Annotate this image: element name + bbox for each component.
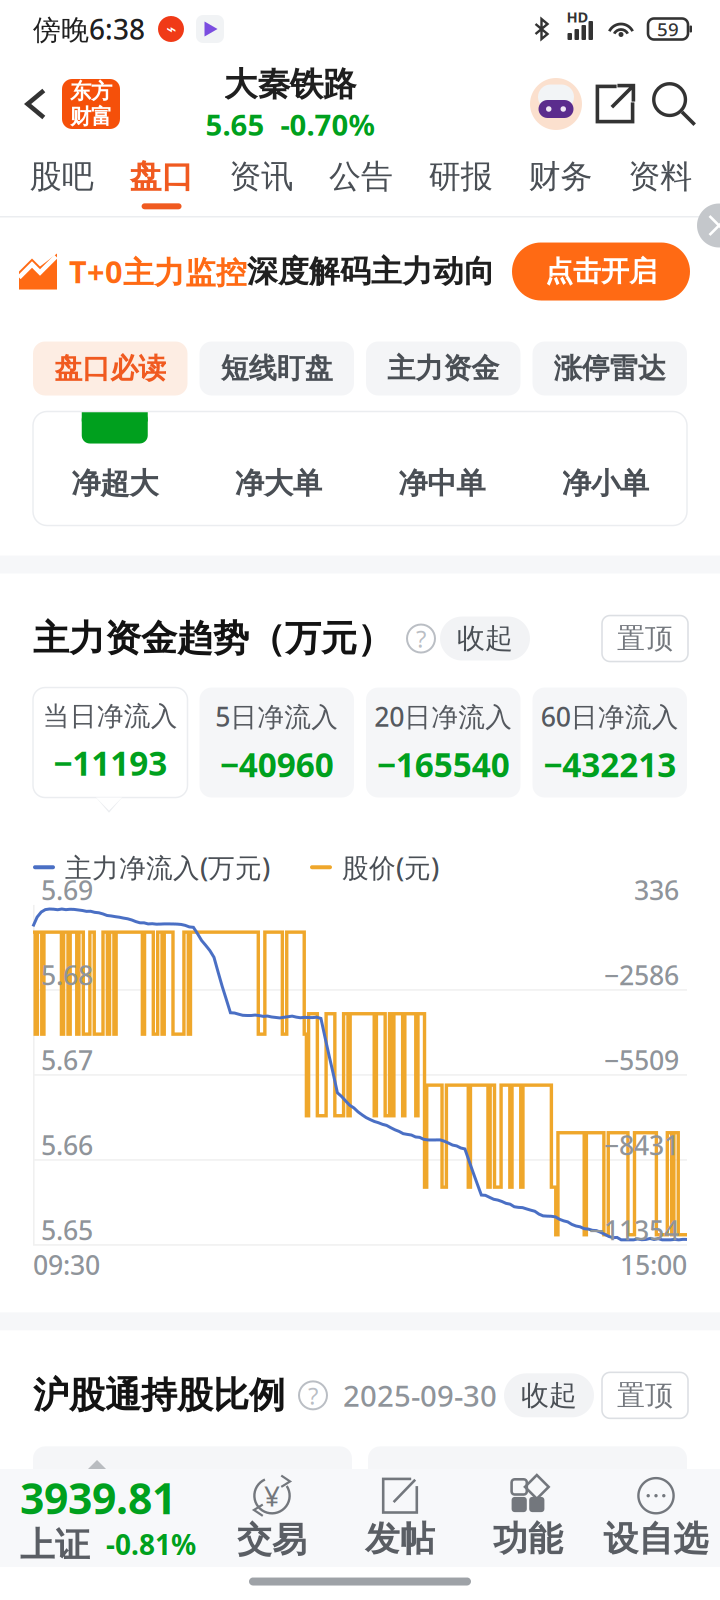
staticText: −2586 [604,957,679,993]
staticText: 5.66 [41,1127,93,1163]
staticText: 盘口必读 [54,351,166,386]
button[interactable]: 收起 [504,1373,594,1417]
button[interactable]: 研报 [411,150,511,216]
staticText: 主力资金趋势（万元） [33,616,393,661]
button[interactable]: 发帖 [336,1471,464,1565]
staticText: 净大单 [235,465,322,501]
staticText: 资讯 [229,157,293,196]
button[interactable]: 60日净流入 [532,687,687,797]
staticText: 股吧 [30,157,94,196]
staticText: ¥ [264,1477,280,1514]
staticText: -0.81% [106,1525,196,1563]
staticText: −8431 [604,1127,679,1163]
button[interactable]: 财务 [511,150,610,216]
button[interactable]: 设自选 [592,1471,720,1565]
staticText: 收起 [457,621,513,656]
staticText: −432213 [543,742,676,786]
button[interactable]: 资讯 [211,150,311,216]
staticText: 研报 [429,157,493,196]
button[interactable]: 盘口 [112,150,211,216]
button[interactable]: 置顶 [602,1372,688,1418]
staticText: 短线盯盘 [221,351,333,386]
button[interactable]: 分享 [584,73,646,135]
staticText: 持仓变化 [469,1490,585,1526]
staticText: ? [416,623,426,654]
staticText: −165540 [377,742,510,786]
staticText: 净小单 [562,465,649,501]
staticText: 5.65 [205,105,264,144]
staticText: 财务 [528,157,592,196]
staticText: 股价(元) [342,849,439,885]
button[interactable]: 关闭 [697,203,720,247]
staticText: 5.67 [41,1042,93,1078]
staticText: 主力净流入(万元) [65,849,270,885]
staticText: 59 [657,17,679,41]
staticText: 收起 [521,1378,577,1413]
staticText: 5日净流入 [215,699,338,734]
button[interactable]: 盘口必读 [33,341,187,395]
button[interactable]: ¥ [208,1471,336,1565]
staticText: 5.69 [41,872,93,908]
staticText: 功能 [493,1518,563,1560]
staticText: 傍晚6:38 [33,10,145,48]
button[interactable]: 主力资金 [366,341,520,395]
staticText: 置顶 [617,621,673,656]
staticText: 交易 [237,1519,307,1561]
staticText: 公告 [329,157,393,196]
staticText: 主力资金 [387,351,499,386]
staticText: 东方 [70,78,112,104]
staticText: 大秦铁路 [224,64,356,105]
staticText: 财富 [70,103,112,130]
staticText: 15:00 [620,1247,687,1282]
staticText: 上证 [20,1524,90,1567]
button[interactable]: 搜索 [646,73,702,135]
staticText: ⌁ [166,19,176,39]
staticText: 60日净流入 [541,699,679,734]
button[interactable]: 收起 [440,616,530,660]
button[interactable]: 当日净流入 [33,687,187,797]
staticText: −40960 [220,742,334,786]
button[interactable]: 东方财富 [62,79,120,129]
staticText: 当日净流入 [43,700,178,733]
staticText: 深度解码主力动向 [247,253,495,290]
button[interactable]: 置顶 [602,615,688,661]
staticText: −11354 [589,1212,679,1248]
staticText: 3939.81 [20,1469,176,1526]
button[interactable]: 短线盯盘 [199,341,354,395]
button[interactable]: 智能助手 [528,75,584,133]
staticText: 涨停雷达 [554,351,666,386]
staticText: HD [566,7,588,26]
staticText: 20日净流入 [374,699,512,734]
button[interactable]: 涨停雷达 [532,341,687,395]
button[interactable]: 返回 [10,68,62,140]
staticText: 净中单 [398,465,485,501]
staticText: −5509 [604,1042,679,1078]
staticText: 5.65 [41,1212,93,1248]
staticText: 净超大 [71,465,158,501]
staticText: 沪股通持股比例 [33,1373,285,1417]
staticText: −11193 [53,741,167,785]
staticText: 09:30 [33,1247,100,1282]
staticText: 盘口 [130,157,194,196]
staticText: ? [308,1379,318,1411]
staticText: 资料 [628,157,692,196]
staticText: 2025-09-30 [343,1376,497,1415]
button[interactable]: 5日净流入 [199,687,354,797]
staticText: 设自选 [603,1518,708,1560]
staticText: -0.70% [280,105,374,144]
button[interactable]: 点击开启 [512,242,690,300]
staticText: T+0主力监控 [69,251,247,292]
staticText: 336 [634,872,679,908]
staticText: 置顶 [617,1378,673,1413]
staticText: 持股比例 [134,1490,250,1526]
button[interactable]: 功能 [464,1471,592,1565]
button[interactable]: 3939.81 [0,1469,208,1567]
staticText: 5.68 [41,957,93,993]
button[interactable]: 股吧 [12,150,112,216]
staticText: 发帖 [365,1518,435,1560]
button[interactable]: 20日净流入 [366,687,520,797]
button[interactable]: 公告 [311,150,411,216]
button[interactable]: 资料 [610,150,710,216]
staticText: 点击开启 [545,254,657,289]
